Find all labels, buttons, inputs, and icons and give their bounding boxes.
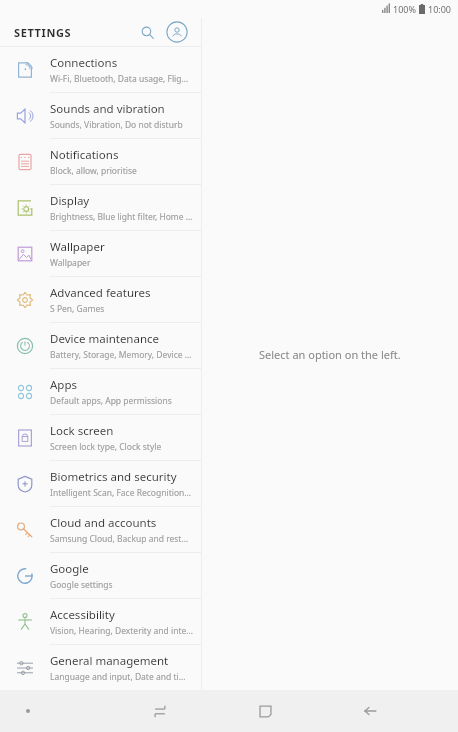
button[interactable]: Google: [0, 553, 201, 598]
button[interactable]: Device maintenance: [0, 323, 201, 368]
staticText: Accessibility: [50, 607, 115, 623]
staticText: Connections: [50, 55, 118, 71]
button[interactable]: Lock screen: [0, 415, 201, 460]
button[interactable]: Apps: [0, 369, 201, 414]
staticText: Default apps, App permissions: [50, 395, 172, 407]
staticText: Advanced features: [50, 285, 151, 301]
staticText: Device maintenance: [50, 331, 160, 347]
staticText: Lock screen: [50, 423, 114, 439]
button[interactable]: Notifications: [0, 139, 201, 184]
button[interactable]: Search: [135, 20, 159, 44]
button[interactable]: Accessibility: [0, 599, 201, 644]
button[interactable]: Display: [0, 185, 201, 230]
staticText: 100%: [393, 3, 416, 15]
staticText: Notifications: [50, 147, 119, 163]
button[interactable]: Connections: [0, 47, 201, 92]
staticText: Sounds and vibration: [50, 101, 165, 117]
staticText: SETTINGS: [14, 25, 72, 40]
button[interactable]: General management: [0, 645, 201, 690]
button[interactable]: Account: [165, 20, 189, 44]
staticText: Block, allow, prioritise: [50, 165, 137, 177]
staticText: Apps: [50, 377, 78, 393]
staticText: S Pen, Games: [50, 303, 105, 315]
staticText: Battery, Storage, Memory, Device se...: [50, 349, 193, 361]
staticText: Google settings: [50, 579, 113, 591]
staticText: Wallpaper: [50, 257, 91, 269]
staticText: Select an option on the left.: [259, 347, 401, 362]
staticText: Language and input, Date and time,...: [50, 671, 193, 683]
button[interactable]: Home: [248, 694, 282, 728]
button[interactable]: Back: [353, 694, 387, 728]
button[interactable]: Wallpaper: [0, 231, 201, 276]
staticText: Screen lock type, Clock style: [50, 441, 162, 453]
staticText: Wallpaper: [50, 239, 105, 255]
button[interactable]: Biometrics and security: [0, 461, 201, 506]
staticText: Intelligent Scan, Face Recognition,...: [50, 487, 193, 499]
staticText: Wi-Fi, Bluetooth, Data usage, Flight...: [50, 73, 193, 85]
staticText: Sounds, Vibration, Do not disturb: [50, 119, 183, 131]
staticText: Brightness, Blue light filter, Home sc..…: [50, 211, 193, 223]
button[interactable]: Menu dot: [18, 701, 38, 721]
staticText: General management: [50, 653, 169, 669]
staticText: Google: [50, 561, 89, 577]
staticText: 10:00: [428, 3, 452, 15]
button[interactable]: Sounds and vibration: [0, 93, 201, 138]
staticText: Biometrics and security: [50, 469, 177, 485]
button[interactable]: Advanced features: [0, 277, 201, 322]
staticText: Vision, Hearing, Dexterity and intera...: [50, 625, 193, 637]
button[interactable]: Recents: [143, 694, 177, 728]
staticText: Cloud and accounts: [50, 515, 157, 531]
staticText: Samsung Cloud, Backup and restor...: [50, 533, 193, 545]
button[interactable]: Cloud and accounts: [0, 507, 201, 552]
staticText: Display: [50, 193, 90, 209]
